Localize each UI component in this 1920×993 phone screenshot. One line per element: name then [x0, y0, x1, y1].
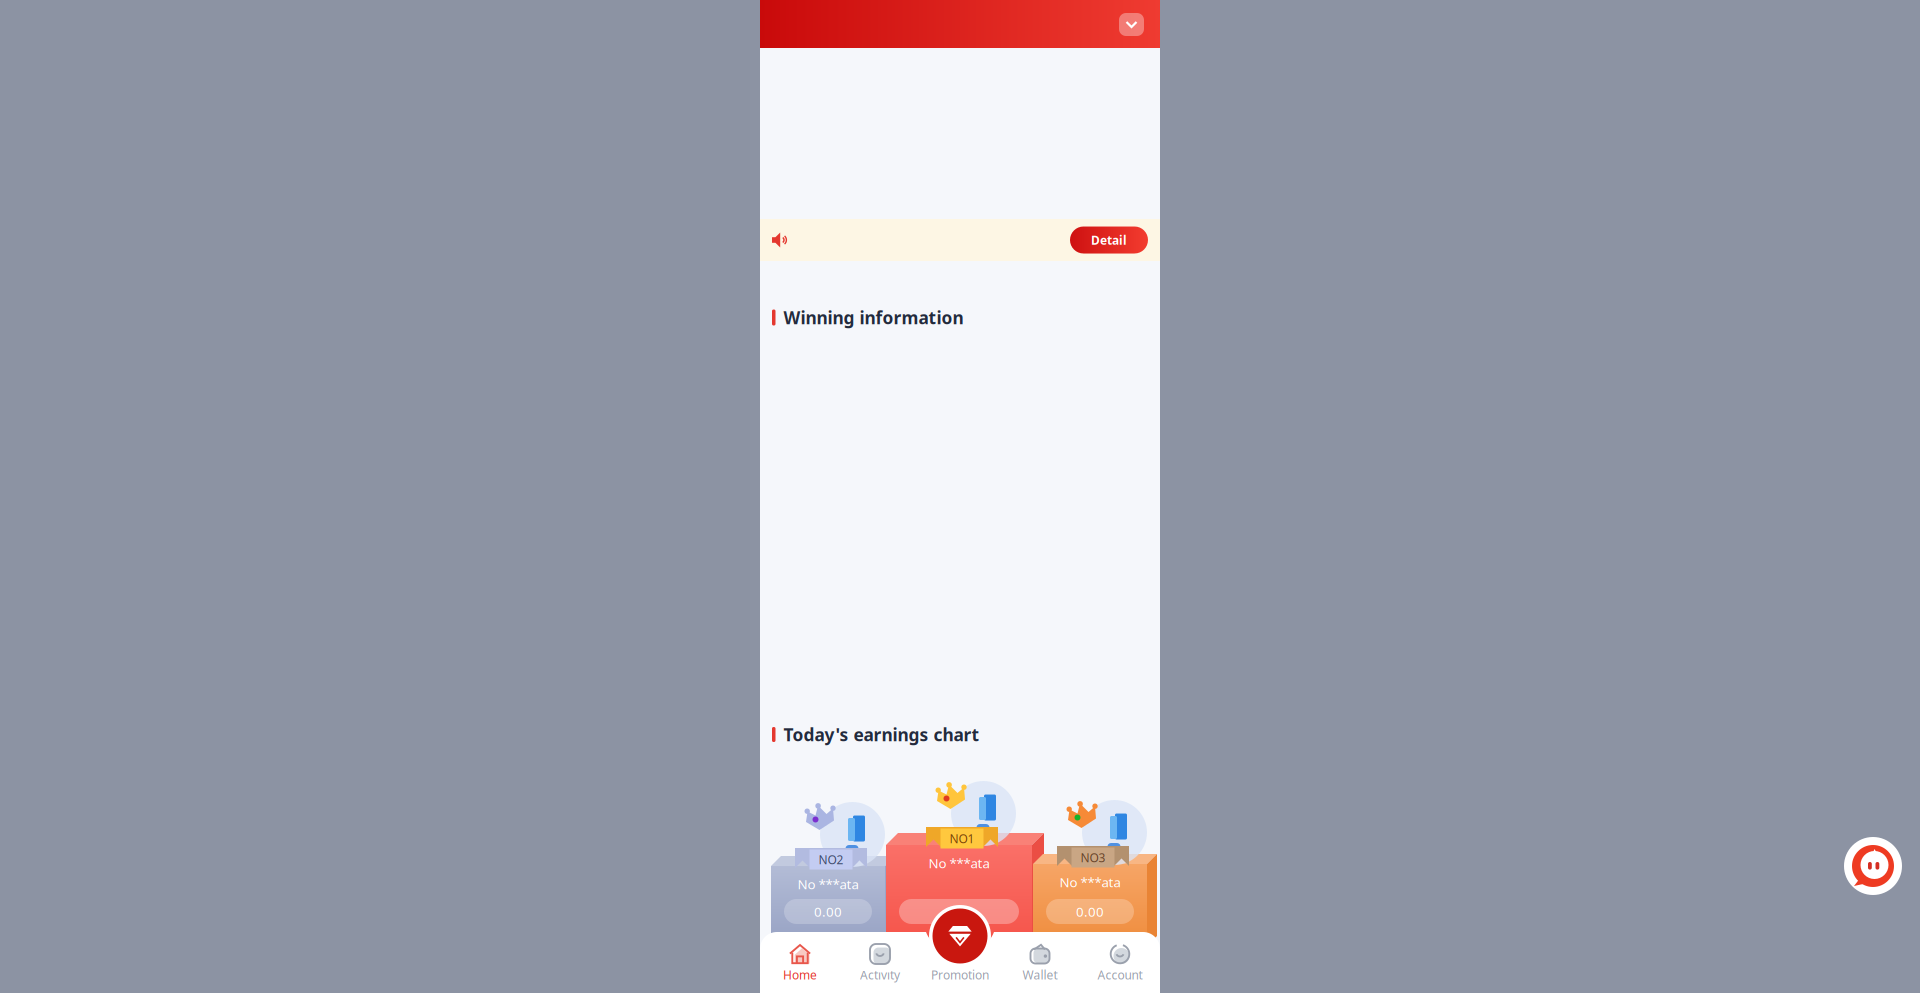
button[interactable]: Account [1080, 934, 1160, 991]
staticText: 0.00 [814, 903, 842, 920]
staticText: Account [1097, 967, 1142, 983]
staticText: Wallet [1022, 967, 1057, 983]
staticText: 0.00 [945, 903, 973, 920]
staticText: Detail [1091, 232, 1127, 248]
staticText: No ***ata [1059, 873, 1120, 891]
button[interactable]: Wallet [1000, 934, 1080, 991]
staticText: NO3 [1080, 849, 1105, 865]
staticText: NO1 [949, 830, 974, 846]
staticText: Today's earnings chart [783, 723, 979, 746]
button[interactable]: Customer service [1844, 837, 1902, 895]
staticText: Activity [860, 967, 900, 983]
button[interactable]: Home [760, 934, 840, 991]
button[interactable]: Promotion [920, 934, 1000, 991]
staticText: No ***ata [797, 875, 858, 893]
staticText: Winning information [783, 306, 963, 329]
button[interactable]: Detail [1070, 226, 1148, 253]
staticText: No ***ata [928, 854, 989, 872]
staticText: Home [783, 967, 817, 983]
button[interactable]: Messages [1119, 13, 1144, 36]
button[interactable]: Activity [840, 934, 920, 991]
staticText: NO2 [818, 851, 843, 867]
staticText: 0.00 [1076, 903, 1104, 920]
staticText: Promotion [931, 967, 989, 983]
button[interactable]: Promotion [929, 905, 991, 967]
